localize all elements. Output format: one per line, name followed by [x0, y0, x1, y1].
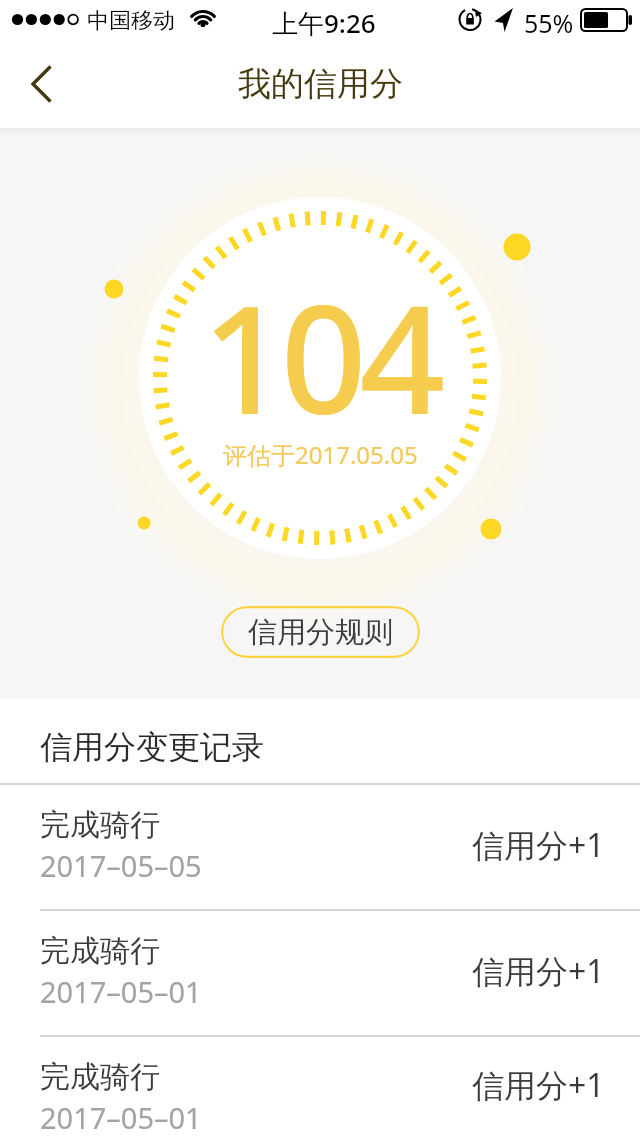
- staticText: 完成骑行: [40, 932, 160, 970]
- staticText: 完成骑行: [40, 806, 160, 844]
- staticText: 信用分变更记录: [40, 727, 264, 767]
- staticText: 55%: [524, 6, 574, 40]
- button[interactable]: 完成骑行: [0, 1037, 640, 1136]
- staticText: 2017–05–05: [40, 846, 202, 885]
- staticText: 上午9:26: [272, 5, 376, 41]
- button[interactable]: Back: [0, 44, 80, 124]
- staticText: 信用分规则: [248, 614, 393, 651]
- staticText: 完成骑行: [40, 1058, 160, 1096]
- staticText: 信用分+1: [472, 1063, 605, 1107]
- staticText: 2017–05–01: [40, 1098, 202, 1136]
- staticText: 104: [202, 254, 439, 458]
- staticText: 我的信用分: [238, 63, 403, 105]
- staticText: 信用分+1: [472, 949, 605, 993]
- button[interactable]: 完成骑行: [0, 911, 640, 1035]
- staticText: 中国移动: [87, 7, 175, 35]
- button[interactable]: 信用分规则: [221, 606, 420, 658]
- staticText: 信用分+1: [472, 823, 605, 867]
- button[interactable]: 完成骑行: [0, 785, 640, 909]
- staticText: 2017–05–01: [40, 972, 202, 1011]
- staticText: 评估于2017.05.05: [223, 438, 418, 471]
